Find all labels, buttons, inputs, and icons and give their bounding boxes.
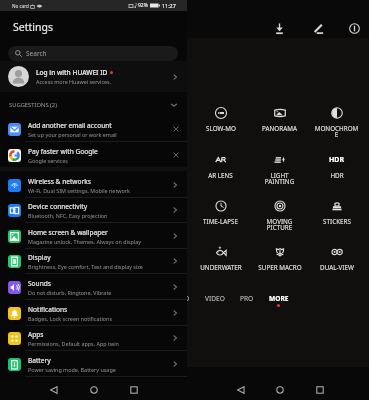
- staticText: Badges, Lock screen notifications: [28, 315, 112, 322]
- staticText: HDR: [330, 171, 344, 180]
- button[interactable]: SUPER MACRO: [257, 244, 302, 272]
- staticText: Apps: [28, 330, 44, 339]
- button[interactable]: Back: [46, 382, 62, 398]
- button[interactable]: SLOW-MO: [198, 105, 243, 133]
- button[interactable]: Home: [272, 382, 288, 398]
- staticText: Do not disturb, Ringtone, Vibrate: [28, 289, 112, 296]
- staticText: MORE: [269, 294, 289, 303]
- button[interactable]: PANORAMA: [257, 105, 302, 133]
- staticText: Home screen & wallpaper: [28, 228, 108, 237]
- staticText: 92%: [138, 2, 148, 9]
- button[interactable]: Back: [233, 382, 249, 398]
- button[interactable]: DUAL-VIEW: [314, 244, 359, 272]
- button[interactable]: HDR: [314, 152, 359, 180]
- staticText: Display: [28, 253, 51, 262]
- button[interactable]: Edit: [309, 19, 327, 37]
- staticText: Wireless & networks: [28, 177, 91, 186]
- staticText: Sounds: [28, 279, 51, 288]
- staticText: Log in with HUAWEI ID: [36, 68, 108, 77]
- button[interactable]: Wireless & networks: [0, 172, 187, 198]
- button[interactable]: MORE: [269, 294, 289, 303]
- other: Dismiss: [173, 152, 179, 158]
- staticText: Settings: [13, 20, 53, 34]
- staticText: SUPER MACRO: [258, 263, 302, 272]
- staticText: Wi-Fi, Dual SIM settings, Mobile network: [28, 187, 130, 194]
- staticText: LIGHT PAINTING: [257, 171, 302, 186]
- button[interactable]: TIME-LAPSE: [198, 198, 243, 226]
- staticText: Brightness, Eye comfort, Text and displa…: [28, 263, 143, 270]
- staticText: Bluetooth, NFC, Easy projection: [28, 212, 108, 219]
- staticText: SLOW-MO: [206, 124, 236, 133]
- other: Dismiss: [173, 126, 179, 132]
- staticText: AR LENS: [208, 171, 233, 180]
- button[interactable]: AR LENS: [198, 152, 243, 180]
- staticText: No card: [12, 3, 29, 9]
- staticText: Google services: [28, 157, 68, 164]
- button[interactable]: Add another email account: [0, 116, 187, 142]
- staticText: Magazine unlock, Themes, Always on displ…: [28, 238, 142, 245]
- staticText: Battery: [28, 356, 51, 365]
- staticText: MONOCHROME: [314, 124, 359, 139]
- staticText: Power saving mode, Battery usage: [28, 366, 116, 373]
- button[interactable]: VIDEO: [205, 294, 225, 303]
- button[interactable]: Notifications: [0, 300, 187, 326]
- staticText: HDR: [329, 155, 345, 165]
- button[interactable]: Sounds: [0, 274, 187, 300]
- button[interactable]: MOVING PICTURE: [257, 198, 302, 232]
- button[interactable]: PRO: [240, 294, 254, 303]
- staticText: PRO: [240, 294, 254, 303]
- staticText: STICKERS: [323, 217, 351, 226]
- button[interactable]: Search: [8, 46, 178, 61]
- button[interactable]: Download: [270, 19, 288, 37]
- staticText: Set up your personal or work email: [28, 131, 117, 138]
- staticText: Notifications: [28, 305, 68, 314]
- button[interactable]: Home screen & wallpaper: [0, 223, 187, 249]
- button[interactable]: UNDERWATER: [198, 244, 243, 272]
- button[interactable]: Display: [0, 248, 187, 274]
- button[interactable]: Log in with HUAWEI ID: [0, 61, 187, 92]
- button[interactable]: Info: [345, 19, 363, 37]
- staticText: Search: [26, 49, 47, 58]
- staticText: Access more Huawei services.: [36, 78, 112, 85]
- staticText: Device connectivity: [28, 202, 88, 211]
- staticText: TIME-LAPSE: [203, 217, 238, 226]
- staticText: UNDERWATER: [200, 263, 242, 272]
- button[interactable]: Battery: [0, 351, 187, 377]
- staticText: SUGGESTIONS (2): [9, 101, 57, 109]
- staticText: Pay faster with Google: [28, 147, 98, 156]
- button[interactable]: Home: [86, 382, 102, 398]
- button[interactable]: Apps: [0, 325, 187, 351]
- staticText: Add another email account: [28, 121, 112, 130]
- button[interactable]: MONOCHROME: [314, 105, 359, 139]
- button[interactable]: Recents: [312, 382, 328, 398]
- staticText: DUAL-VIEW: [320, 263, 354, 272]
- staticText: VIDEO: [205, 294, 225, 303]
- staticText: O: [187, 294, 190, 303]
- button[interactable]: STICKERS: [314, 198, 359, 226]
- staticText: PANORAMA: [262, 124, 297, 133]
- staticText: Permissions, Default apps, App twin: [28, 340, 119, 347]
- staticText: MOVING PICTURE: [257, 217, 302, 232]
- staticText: 11:27: [162, 2, 176, 9]
- button[interactable]: Device connectivity: [0, 197, 187, 223]
- button[interactable]: LIGHT PAINTING: [257, 152, 302, 186]
- button[interactable]: O: [187, 294, 190, 303]
- button[interactable]: Pay faster with Google: [0, 142, 187, 168]
- button[interactable]: Recents: [126, 382, 142, 398]
